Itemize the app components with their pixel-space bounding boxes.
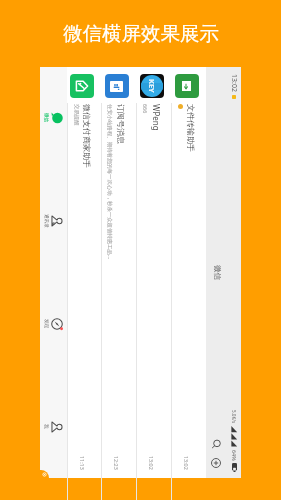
button[interactable]: 文件传输助手 xyxy=(171,67,206,478)
staticText: 12:23 xyxy=(113,456,120,470)
button[interactable]: 我 xyxy=(40,375,67,478)
staticText: 13:02 xyxy=(229,74,239,92)
button[interactable]: 通讯录 xyxy=(40,169,67,272)
staticText: 微信 xyxy=(43,113,49,123)
staticText: 微信 xyxy=(212,265,222,281)
staticText: WPeng xyxy=(151,104,162,131)
staticText: 666 xyxy=(142,104,149,114)
button[interactable]: 订阅号消息 xyxy=(101,67,136,478)
button[interactable]: 发现 xyxy=(40,272,67,375)
staticText: 13:02 xyxy=(183,456,190,470)
button[interactable]: Search xyxy=(209,436,224,451)
staticText: 交易提醒 xyxy=(73,104,80,126)
staticText: 微信支付商家助手 xyxy=(82,104,92,168)
staticText: 住安小站路程、期待着您的每一次心动，秒杀一众超值特惠工品… xyxy=(107,104,114,260)
button[interactable]: 微信支付商家助手 xyxy=(67,67,101,478)
button[interactable]: KEY xyxy=(136,67,171,478)
staticText: 64% xyxy=(231,450,238,461)
staticText: 文件传输助手 xyxy=(186,104,196,152)
staticText: 订阅号消息 xyxy=(116,104,126,144)
staticText: 微信横屏效果展示 xyxy=(63,21,219,46)
staticText: 我 xyxy=(43,424,49,429)
staticText: 13:02 xyxy=(148,456,155,470)
staticText: 通讯录 xyxy=(43,214,49,228)
staticText: KEY xyxy=(147,79,157,93)
staticText: 发现 xyxy=(43,319,49,329)
button[interactable]: Add xyxy=(209,455,224,470)
staticText: 11:13 xyxy=(79,456,86,470)
button[interactable]: 微信 xyxy=(40,67,67,169)
staticText: 5.0K/s xyxy=(231,410,237,424)
